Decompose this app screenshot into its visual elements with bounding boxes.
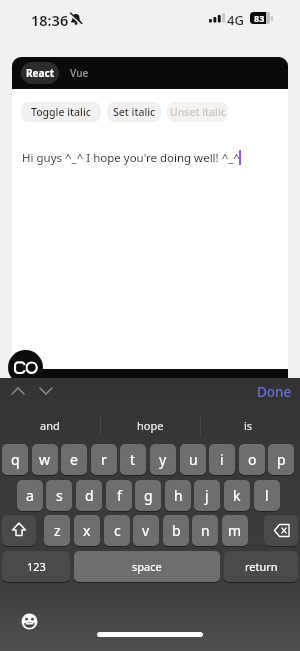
- staticText: c: [114, 521, 121, 540]
- staticText: g: [144, 486, 153, 505]
- staticText: s: [56, 486, 63, 505]
- staticText: k: [233, 486, 241, 505]
- button[interactable]: React: [21, 62, 59, 84]
- staticText: Done: [257, 383, 292, 401]
- staticText: t: [130, 450, 136, 469]
- button[interactable]: u: [180, 444, 206, 475]
- button[interactable]: o: [239, 444, 265, 475]
- staticText: q: [11, 450, 20, 469]
- button[interactable]: f: [106, 480, 132, 511]
- button[interactable]: Vue: [70, 66, 89, 80]
- button[interactable]: Unset italic: [167, 102, 228, 122]
- staticText: Unset italic: [170, 105, 226, 119]
- staticText: h: [174, 486, 183, 505]
- button[interactable]: [2, 515, 36, 546]
- staticText: p: [277, 450, 286, 469]
- button[interactable]: [8, 350, 43, 385]
- staticText: and: [40, 418, 60, 433]
- button[interactable]: q: [2, 444, 28, 475]
- button[interactable]: space: [74, 551, 220, 582]
- button[interactable]: j: [194, 480, 220, 511]
- staticText: n: [201, 521, 210, 540]
- button[interactable]: i: [209, 444, 235, 475]
- button[interactable]: d: [76, 480, 102, 511]
- button[interactable]: p: [268, 444, 294, 475]
- staticText: x: [83, 521, 91, 540]
- staticText: m: [228, 521, 242, 540]
- button[interactable]: s: [46, 480, 72, 511]
- button[interactable]: v: [133, 515, 159, 546]
- staticText: Toggle italic: [31, 105, 91, 119]
- staticText: Vue: [70, 66, 89, 80]
- button[interactable]: [264, 515, 298, 546]
- staticText: hope: [137, 418, 164, 433]
- staticText: z: [54, 521, 61, 540]
- button[interactable]: is: [206, 412, 290, 438]
- staticText: 123: [27, 559, 46, 574]
- button[interactable]: and: [8, 412, 92, 438]
- button[interactable]: x: [74, 515, 100, 546]
- staticText: l: [265, 486, 269, 505]
- button[interactable]: y: [150, 444, 176, 475]
- staticText: w: [39, 450, 51, 469]
- staticText: j: [205, 486, 209, 505]
- button[interactable]: hope: [108, 412, 192, 438]
- staticText: f: [117, 486, 122, 505]
- button[interactable]: t: [120, 444, 146, 475]
- button[interactable]: b: [163, 515, 189, 546]
- staticText: space: [132, 559, 162, 574]
- button[interactable]: w: [32, 444, 58, 475]
- staticText: Set italic: [113, 105, 156, 119]
- staticText: o: [248, 450, 257, 469]
- staticText: 4G: [227, 11, 244, 29]
- button[interactable]: Done: [252, 382, 296, 402]
- button[interactable]: a: [17, 480, 43, 511]
- staticText: e: [70, 450, 78, 469]
- staticText: return: [245, 559, 278, 574]
- button[interactable]: Set italic: [107, 102, 161, 122]
- button[interactable]: r: [91, 444, 117, 475]
- staticText: v: [142, 521, 150, 540]
- staticText: Hi guys ^_^ I hope you're doing well! ^_…: [22, 150, 240, 166]
- staticText: React: [26, 66, 55, 80]
- button[interactable]: m: [222, 515, 248, 546]
- staticText: u: [189, 450, 198, 469]
- staticText: r: [101, 450, 107, 469]
- button[interactable]: 123: [2, 551, 70, 582]
- button[interactable]: n: [192, 515, 218, 546]
- button[interactable]: z: [44, 515, 70, 546]
- staticText: a: [26, 486, 34, 505]
- button[interactable]: e: [61, 444, 87, 475]
- button[interactable]: k: [224, 480, 250, 511]
- staticText: 18:36: [31, 10, 69, 30]
- staticText: 83: [254, 12, 265, 24]
- button[interactable]: l: [254, 480, 280, 511]
- staticText: b: [172, 521, 181, 540]
- staticText: i: [220, 450, 224, 469]
- button[interactable]: Toggle italic: [21, 102, 101, 122]
- button[interactable]: h: [165, 480, 191, 511]
- button[interactable]: g: [135, 480, 161, 511]
- button[interactable]: c: [104, 515, 130, 546]
- staticText: is: [244, 418, 253, 433]
- staticText: y: [159, 450, 167, 469]
- button[interactable]: return: [224, 551, 298, 582]
- staticText: d: [85, 486, 94, 505]
- button[interactable]: [21, 613, 38, 630]
